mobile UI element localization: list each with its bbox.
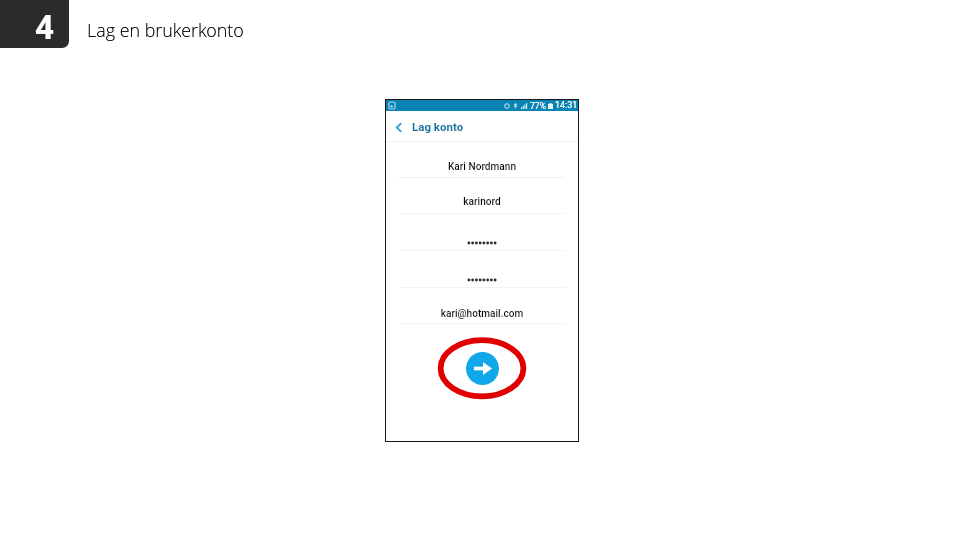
button[interactable]: Back: [386, 111, 412, 141]
button[interactable]: [386, 250, 578, 287]
staticText: karinord: [386, 196, 578, 208]
button[interactable]: karinord: [386, 177, 578, 213]
staticText: Lag en brukerkonto: [87, 18, 244, 42]
staticText: 14:31: [555, 100, 578, 111]
staticText: 77%: [530, 101, 546, 111]
button[interactable]: [386, 213, 578, 250]
staticText: Lag en brukerkonto: [87, 18, 244, 42]
button[interactable]: Kari Nordmann: [386, 141, 578, 178]
staticText: kari@hotmail.com: [386, 308, 578, 320]
button[interactable]: Step 4: [0, 0, 69, 48]
staticText: 4: [35, 8, 54, 47]
staticText: Lag konto: [412, 120, 464, 133]
button[interactable]: kari@hotmail.com: [386, 287, 578, 323]
staticText: Kari Nordmann: [386, 161, 578, 173]
button[interactable]: Continue: [466, 352, 499, 385]
